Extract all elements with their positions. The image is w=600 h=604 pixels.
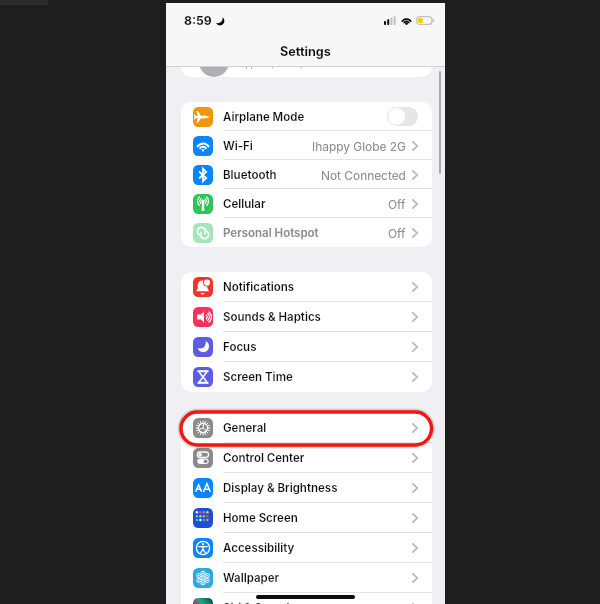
staticText: Accessibility [223,541,295,555]
staticText: Personal Hotspot [223,226,319,240]
button[interactable]: Cellular [181,189,432,218]
button[interactable]: Siri & Search [181,593,432,604]
staticText: Cellular [223,197,266,211]
staticText: Screen Time [223,370,293,384]
button[interactable]: Bluetooth [181,160,432,189]
staticText: Wi-Fi [223,139,253,153]
button[interactable]: Control Center [181,443,432,473]
staticText: Off [388,197,406,211]
button[interactable]: Apple ID [181,32,432,77]
staticText: Settings [280,44,331,59]
button[interactable]: Wallpaper [181,563,432,593]
button[interactable]: Notifications [181,272,432,302]
staticText: Apple ID [240,43,287,57]
staticText: Ihappy Globe 2G [312,139,406,153]
staticText: Not Connected [321,168,406,182]
staticText: 8:59 [184,13,212,28]
staticText: Sounds & Haptics [223,310,321,324]
button[interactable]: Airplane Mode [181,102,432,131]
staticText: Wallpaper [223,571,280,585]
staticText: Off [388,226,406,240]
staticText: Apple ID, iCloud, Media & Purchases [240,59,378,69]
staticText: Control Center [223,451,305,465]
button[interactable]: Personal Hotspot [181,218,432,247]
staticText: Home Screen [223,511,298,525]
button[interactable]: Sounds & Haptics [181,302,432,332]
button[interactable]: General [181,413,432,443]
staticText: Notifications [223,280,295,294]
staticText: General [223,421,267,435]
staticText: Siri & Search [223,601,294,604]
staticText: Airplane Mode [223,110,305,124]
button[interactable]: Accessibility [181,533,432,563]
button[interactable]: Focus [181,332,432,362]
staticText: Focus [223,340,257,354]
button[interactable]: Home Screen [181,503,432,533]
button[interactable]: Screen Time [181,362,432,392]
button[interactable]: Display & Brightness [181,473,432,503]
button[interactable]: Wi-Fi [181,131,432,160]
staticText: Bluetooth [223,168,277,182]
staticText: Display & Brightness [223,481,338,495]
